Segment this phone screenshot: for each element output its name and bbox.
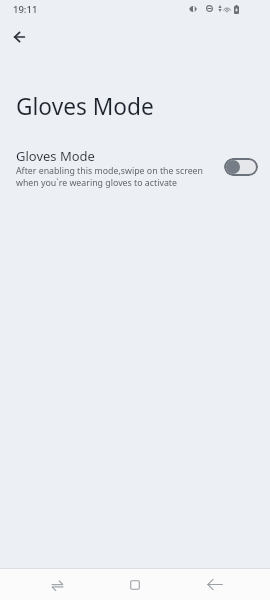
staticText: 19:11: [13, 3, 38, 16]
button[interactable]: Gloves Mode switch: [224, 158, 258, 176]
staticText: Gloves Mode: [16, 91, 154, 122]
button[interactable]: Gloves Mode: [0, 142, 270, 192]
button[interactable]: Recent apps: [18, 569, 96, 600]
button[interactable]: Back: [174, 569, 252, 600]
staticText: After enabling this mode,swipe on the sc…: [16, 165, 208, 188]
button[interactable]: Home: [96, 569, 174, 600]
staticText: Gloves Mode: [16, 147, 95, 165]
button[interactable]: Back: [7, 25, 31, 49]
